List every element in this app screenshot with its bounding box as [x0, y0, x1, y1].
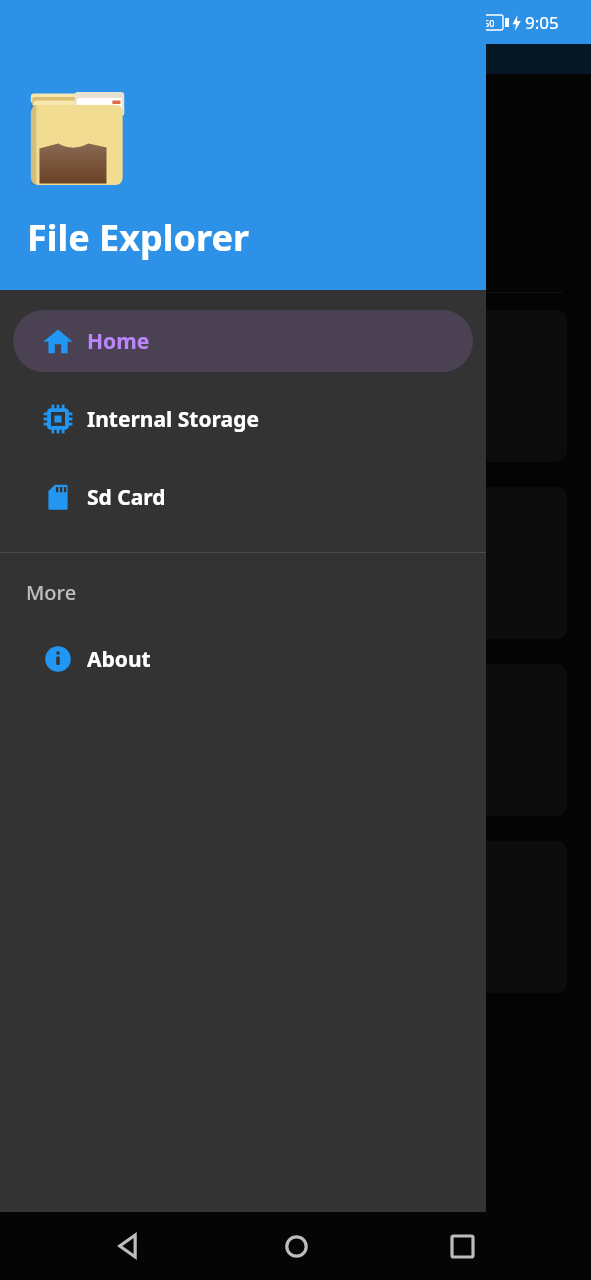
staticText: MB: [46, 568, 71, 590]
staticText: More: [26, 579, 77, 606]
button[interactable]: IMG_20230494632: [24, 310, 567, 462]
button[interactable]: Sd Card: [13, 466, 473, 528]
staticText: 9:05: [525, 11, 559, 34]
button[interactable]: VID_2023619417: [24, 664, 567, 816]
staticText: IMG_20230494632: [46, 348, 221, 375]
button[interactable]: Home: [258, 1212, 334, 1280]
staticText: Sd Card: [87, 483, 166, 512]
staticText: File Explorer: [27, 213, 250, 262]
button[interactable]: About: [13, 628, 473, 690]
button[interactable]: Screenshot_20231104: [24, 487, 567, 639]
button[interactable]: Home: [13, 310, 473, 372]
staticText: 60: [484, 17, 495, 29]
staticText: MB: [46, 391, 71, 413]
button[interactable]: Back: [91, 1212, 167, 1280]
button[interactable]: DOC_2023625320: [24, 841, 567, 993]
button[interactable]: Recent apps: [424, 1212, 500, 1280]
staticText: APKs: [260, 271, 310, 292]
button[interactable]: Internal Storage: [13, 388, 473, 450]
staticText: About: [87, 645, 151, 674]
staticText: Internal Storage: [87, 405, 259, 434]
staticText: Home: [87, 327, 150, 356]
